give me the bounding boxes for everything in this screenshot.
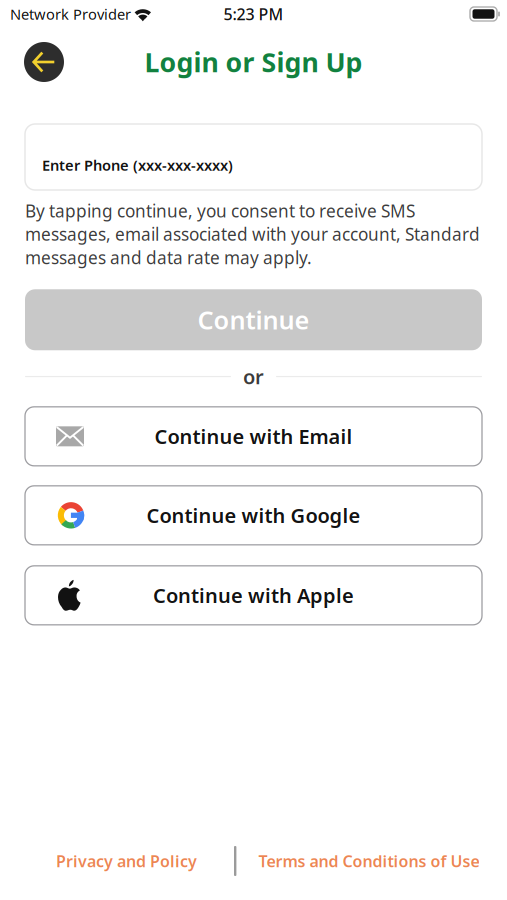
button[interactable]: Terms and Conditions of Use — [236, 844, 500, 878]
staticText: Terms and Conditions of Use — [258, 850, 479, 872]
staticText: Login or Sign Up — [144, 44, 362, 80]
staticText: Continue with Email — [154, 423, 352, 450]
staticText: Continue with Google — [146, 502, 360, 529]
button[interactable]: Privacy and Policy — [56, 844, 234, 878]
staticText: 5:23 PM — [223, 3, 283, 25]
button[interactable]: Continue with Apple — [25, 566, 482, 625]
button[interactable]: Continue — [25, 289, 482, 350]
staticText: messages and data rate may apply. — [25, 246, 312, 269]
staticText: messages, email associated with your acc… — [25, 222, 480, 246]
staticText: By tapping continue, you consent to rece… — [25, 199, 415, 222]
staticText: Privacy and Policy — [56, 850, 197, 872]
button[interactable]: Back — [22, 40, 66, 84]
staticText: Continue — [197, 303, 309, 337]
staticText: Continue with Apple — [153, 582, 354, 609]
staticText: or — [243, 363, 264, 390]
staticText: Enter Phone (xxx-xxx-xxxx) — [42, 155, 233, 175]
staticText: Network Provider — [10, 4, 131, 24]
button[interactable]: Continue with Google — [25, 486, 482, 545]
button[interactable]: Continue with Email — [25, 407, 482, 466]
button[interactable]: Enter Phone (xxx-xxx-xxxx) — [25, 124, 482, 190]
